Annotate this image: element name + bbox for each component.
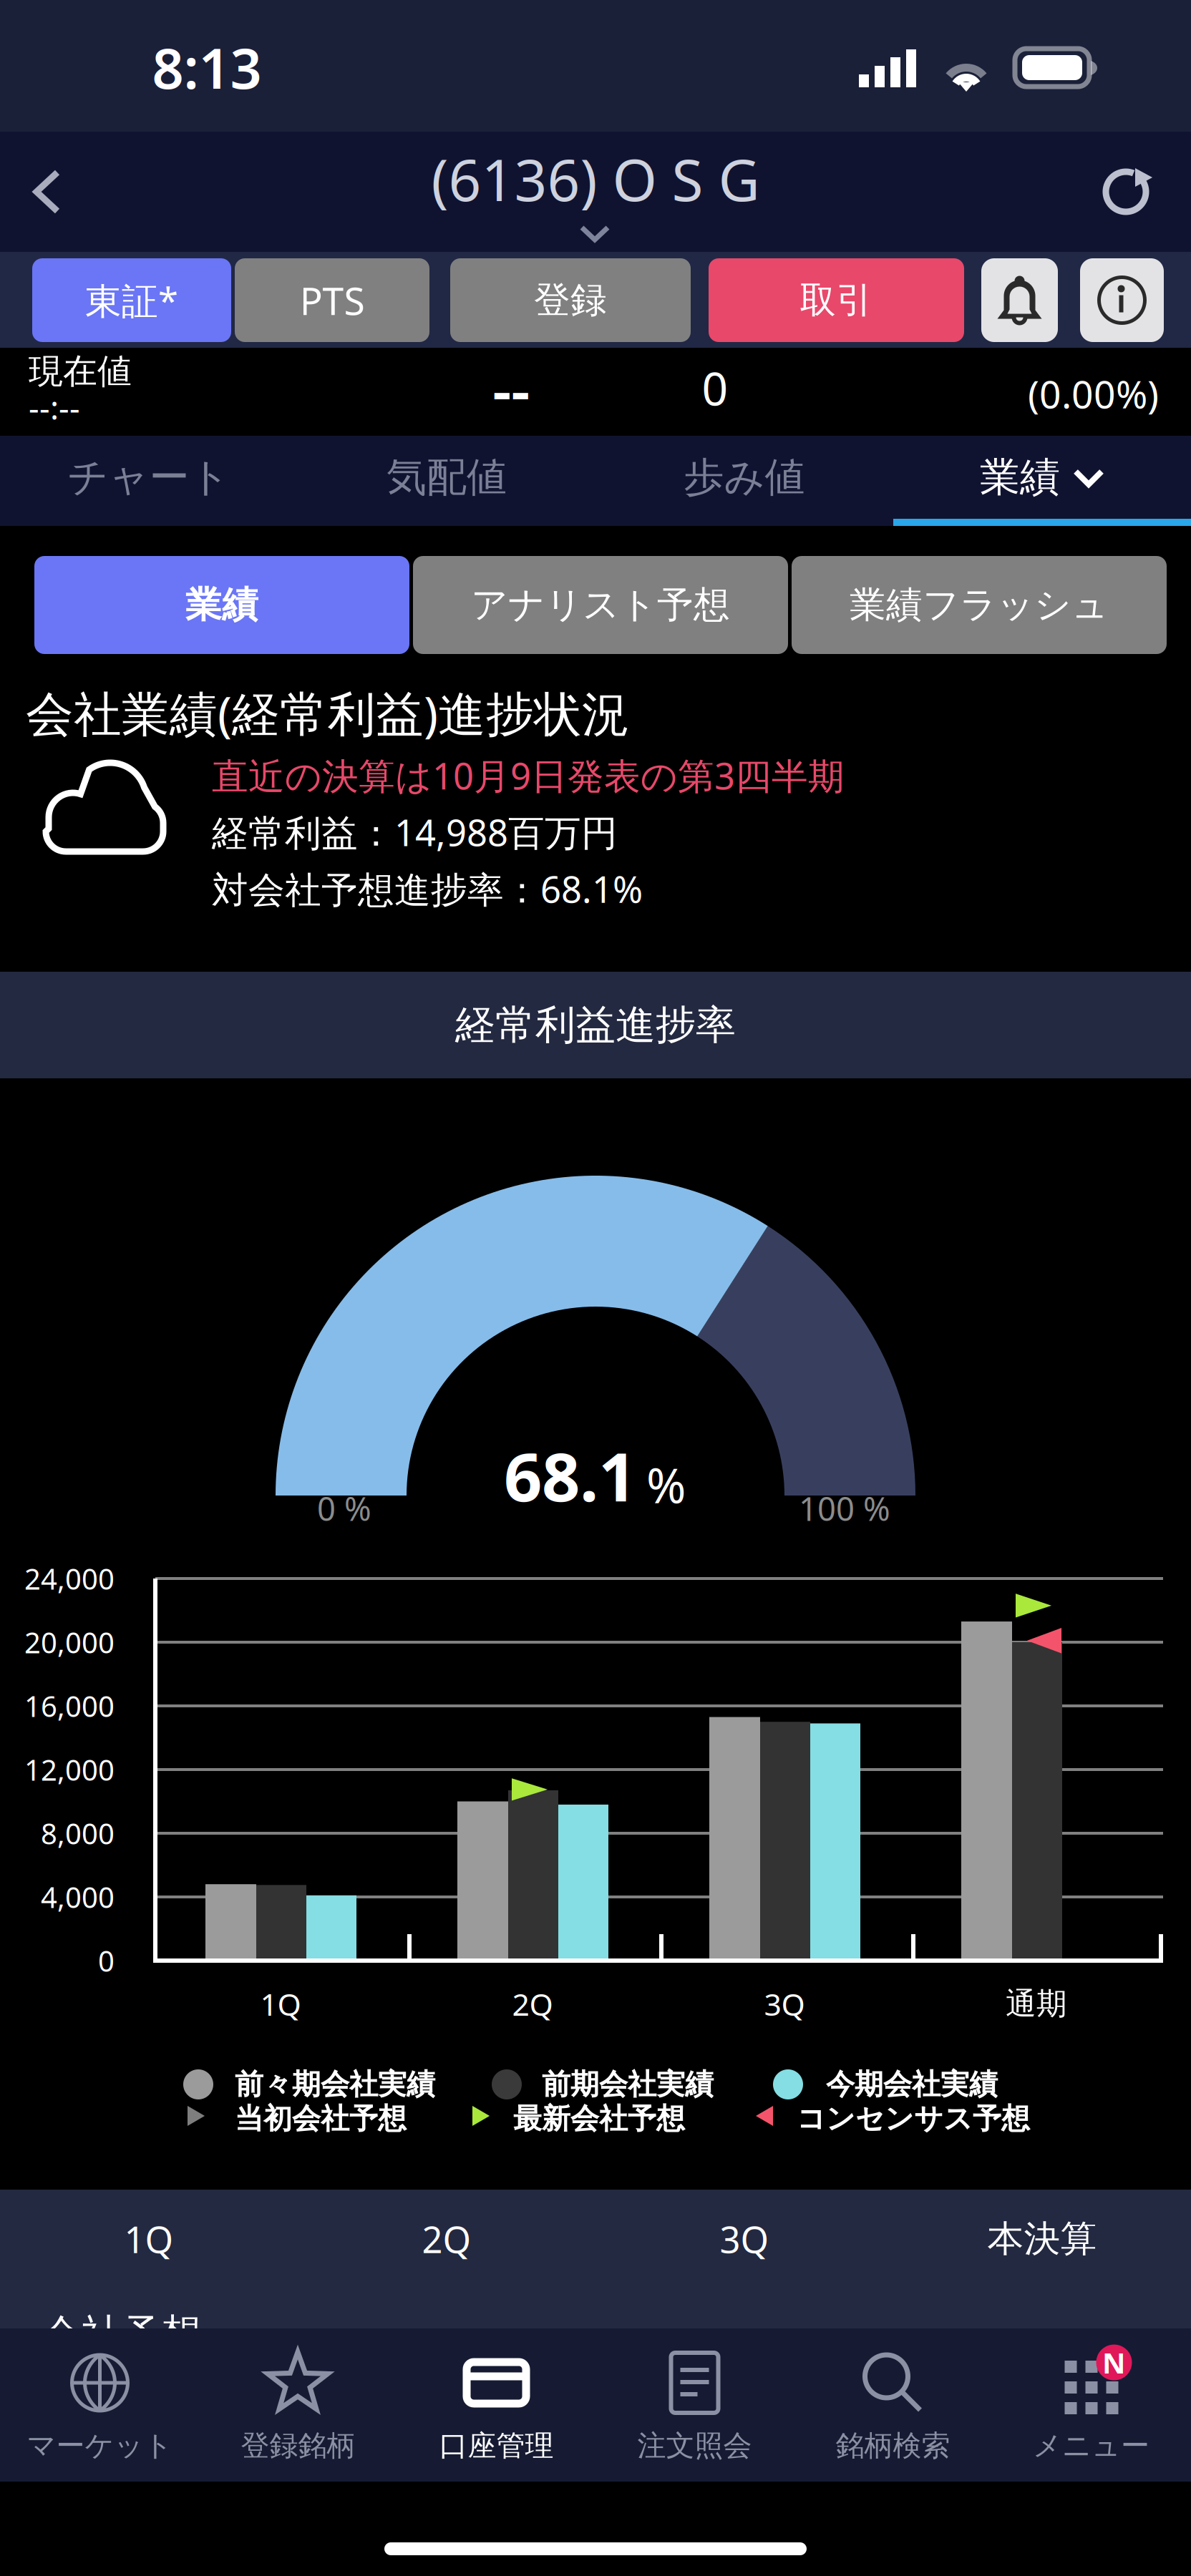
staticText: 今期会社実績 — [826, 2067, 998, 2102]
staticText: 0 — [702, 357, 728, 418]
button[interactable]: 業績 — [893, 436, 1191, 519]
staticText: % — [646, 1453, 686, 1516]
staticText: 会社業績(経常利益)進捗状況 — [26, 681, 630, 745]
staticText: 気配値 — [387, 453, 507, 502]
staticText: 0 % — [317, 1487, 371, 1530]
staticText: 前期会社実績 — [542, 2067, 714, 2102]
staticText: -- — [492, 350, 530, 429]
staticText: 本決算 — [987, 2217, 1097, 2261]
staticText: 取引 — [800, 278, 873, 322]
staticText: 8,000 — [41, 1814, 115, 1852]
staticText: コンセンサス予想 — [797, 2101, 1030, 2136]
staticText: 68.1 — [504, 1431, 636, 1520]
staticText: 100 % — [799, 1487, 890, 1530]
button[interactable]: チャート — [0, 436, 298, 519]
button[interactable]: アナリスト予想 — [413, 556, 788, 654]
staticText: 16,000 — [24, 1687, 115, 1725]
staticText: 24,000 — [24, 1559, 115, 1597]
staticText: 20,000 — [24, 1623, 115, 1661]
staticText: チャート — [68, 453, 230, 502]
staticText: マーケット — [27, 2428, 173, 2463]
button[interactable]: 1Q — [0, 2190, 298, 2288]
button[interactable]: PTS — [235, 258, 429, 342]
staticText: 3Q — [720, 2215, 769, 2263]
button[interactable]: N — [992, 2328, 1190, 2482]
staticText: 12,000 — [24, 1751, 115, 1789]
staticText: 経常利益：14,988百万円 — [212, 808, 618, 856]
staticText: アナリスト予想 — [471, 583, 730, 627]
button[interactable]: 業績フラッシュ — [792, 556, 1167, 654]
staticText: メニュー — [1033, 2428, 1149, 2463]
staticText: 0 — [98, 1942, 115, 1980]
staticText: 会社予想 — [42, 2310, 202, 2359]
button[interactable]: Information — [1080, 258, 1164, 342]
staticText: N — [1102, 2343, 1126, 2381]
button[interactable]: 登録銘柄 — [199, 2328, 397, 2482]
staticText: 4,000 — [41, 1878, 115, 1916]
staticText: 口座管理 — [439, 2428, 554, 2463]
staticText: 1Q — [124, 2215, 174, 2263]
staticText: 3Q — [764, 1984, 805, 2024]
staticText: 最新会社予想 — [513, 2101, 685, 2136]
staticText: 通期 — [1006, 1985, 1067, 2023]
staticText: 現在値 — [29, 350, 132, 392]
button[interactable]: 3Q — [595, 2190, 893, 2288]
staticText: 直近の決算は10月9日発表の第3四半期 — [212, 751, 845, 799]
button[interactable]: 東証* — [32, 258, 231, 342]
staticText: --:-- — [29, 386, 80, 429]
staticText: 業績 — [185, 583, 258, 627]
staticText: 東証* — [85, 276, 178, 324]
staticText: 1Q — [260, 1984, 301, 2024]
button[interactable]: 業績 — [34, 556, 409, 654]
staticText: (6136) O S G — [431, 141, 760, 217]
staticText: 2Q — [422, 2215, 471, 2263]
staticText: 銘柄検索 — [836, 2428, 950, 2463]
staticText: 登録銘柄 — [241, 2428, 355, 2463]
staticText: 前々期会社実績 — [235, 2067, 435, 2102]
button[interactable]: 2Q — [298, 2190, 595, 2288]
button[interactable]: 気配値 — [298, 436, 595, 519]
button[interactable]: 注文照会 — [595, 2328, 794, 2482]
button[interactable]: 歩み値 — [595, 436, 893, 519]
staticText: PTS — [300, 275, 365, 326]
staticText: 業績フラッシュ — [850, 583, 1109, 627]
staticText: 2Q — [512, 1984, 553, 2024]
staticText: 当初会社予想 — [235, 2101, 407, 2136]
button[interactable]: 口座管理 — [397, 2328, 595, 2482]
staticText: 業績 — [980, 453, 1060, 502]
button[interactable]: 取引 — [709, 258, 964, 342]
button[interactable]: 登録 — [450, 258, 691, 342]
staticText: 歩み値 — [684, 453, 805, 502]
button[interactable]: Back — [0, 132, 93, 252]
staticText: 対会社予想進捗率：68.1% — [212, 865, 643, 913]
staticText: (0.00%) — [1028, 368, 1159, 419]
button[interactable]: 本決算 — [893, 2190, 1191, 2288]
button[interactable]: 銘柄検索 — [794, 2328, 992, 2482]
staticText: 経常利益進捗率 — [455, 1000, 736, 1050]
button[interactable]: Alerts — [981, 258, 1058, 342]
staticText: 8:13 — [152, 31, 262, 104]
staticText: 登録 — [534, 278, 607, 322]
button[interactable]: マーケット — [1, 2328, 199, 2482]
button[interactable]: Reload — [1081, 132, 1174, 252]
staticText: 注文照会 — [637, 2428, 752, 2463]
